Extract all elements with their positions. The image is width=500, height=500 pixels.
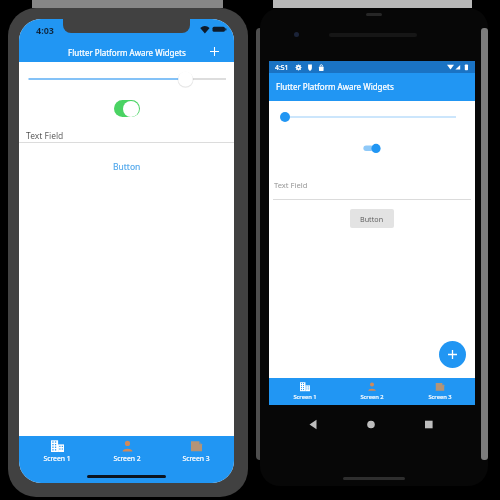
button[interactable]: Add <box>207 44 222 59</box>
button[interactable]: Toggle switch <box>361 141 381 155</box>
staticText: Screen 3 <box>428 393 452 401</box>
button[interactable]: Screen 3 <box>164 436 228 462</box>
staticText: Screen 1 <box>293 393 317 401</box>
button[interactable]: Toggle switch <box>114 100 140 117</box>
staticText: Screen 2 <box>113 454 141 463</box>
staticText: 4:03 <box>36 24 54 36</box>
staticText: Text Field <box>274 180 308 190</box>
staticText: Flutter Platform Aware Widgets <box>276 81 394 92</box>
button[interactable]: Screen 1 <box>273 378 337 400</box>
staticText: Button <box>113 161 141 173</box>
staticText: Text Field <box>26 130 64 142</box>
button[interactable]: Button <box>113 161 141 173</box>
staticText: Flutter Platform Aware Widgets <box>68 47 186 58</box>
staticText: Screen 3 <box>182 454 210 463</box>
staticText: Screen 2 <box>360 393 384 401</box>
button[interactable]: Screen 2 <box>95 436 159 462</box>
button[interactable]: Button <box>350 209 394 228</box>
staticText: Button <box>360 214 384 224</box>
button[interactable]: Add <box>439 341 466 368</box>
staticText: 4:51 <box>275 63 289 72</box>
button[interactable]: Screen 3 <box>408 378 472 400</box>
button[interactable]: Screen 1 <box>25 436 89 462</box>
button[interactable]: Screen 2 <box>340 378 404 400</box>
staticText: Screen 1 <box>43 454 71 463</box>
